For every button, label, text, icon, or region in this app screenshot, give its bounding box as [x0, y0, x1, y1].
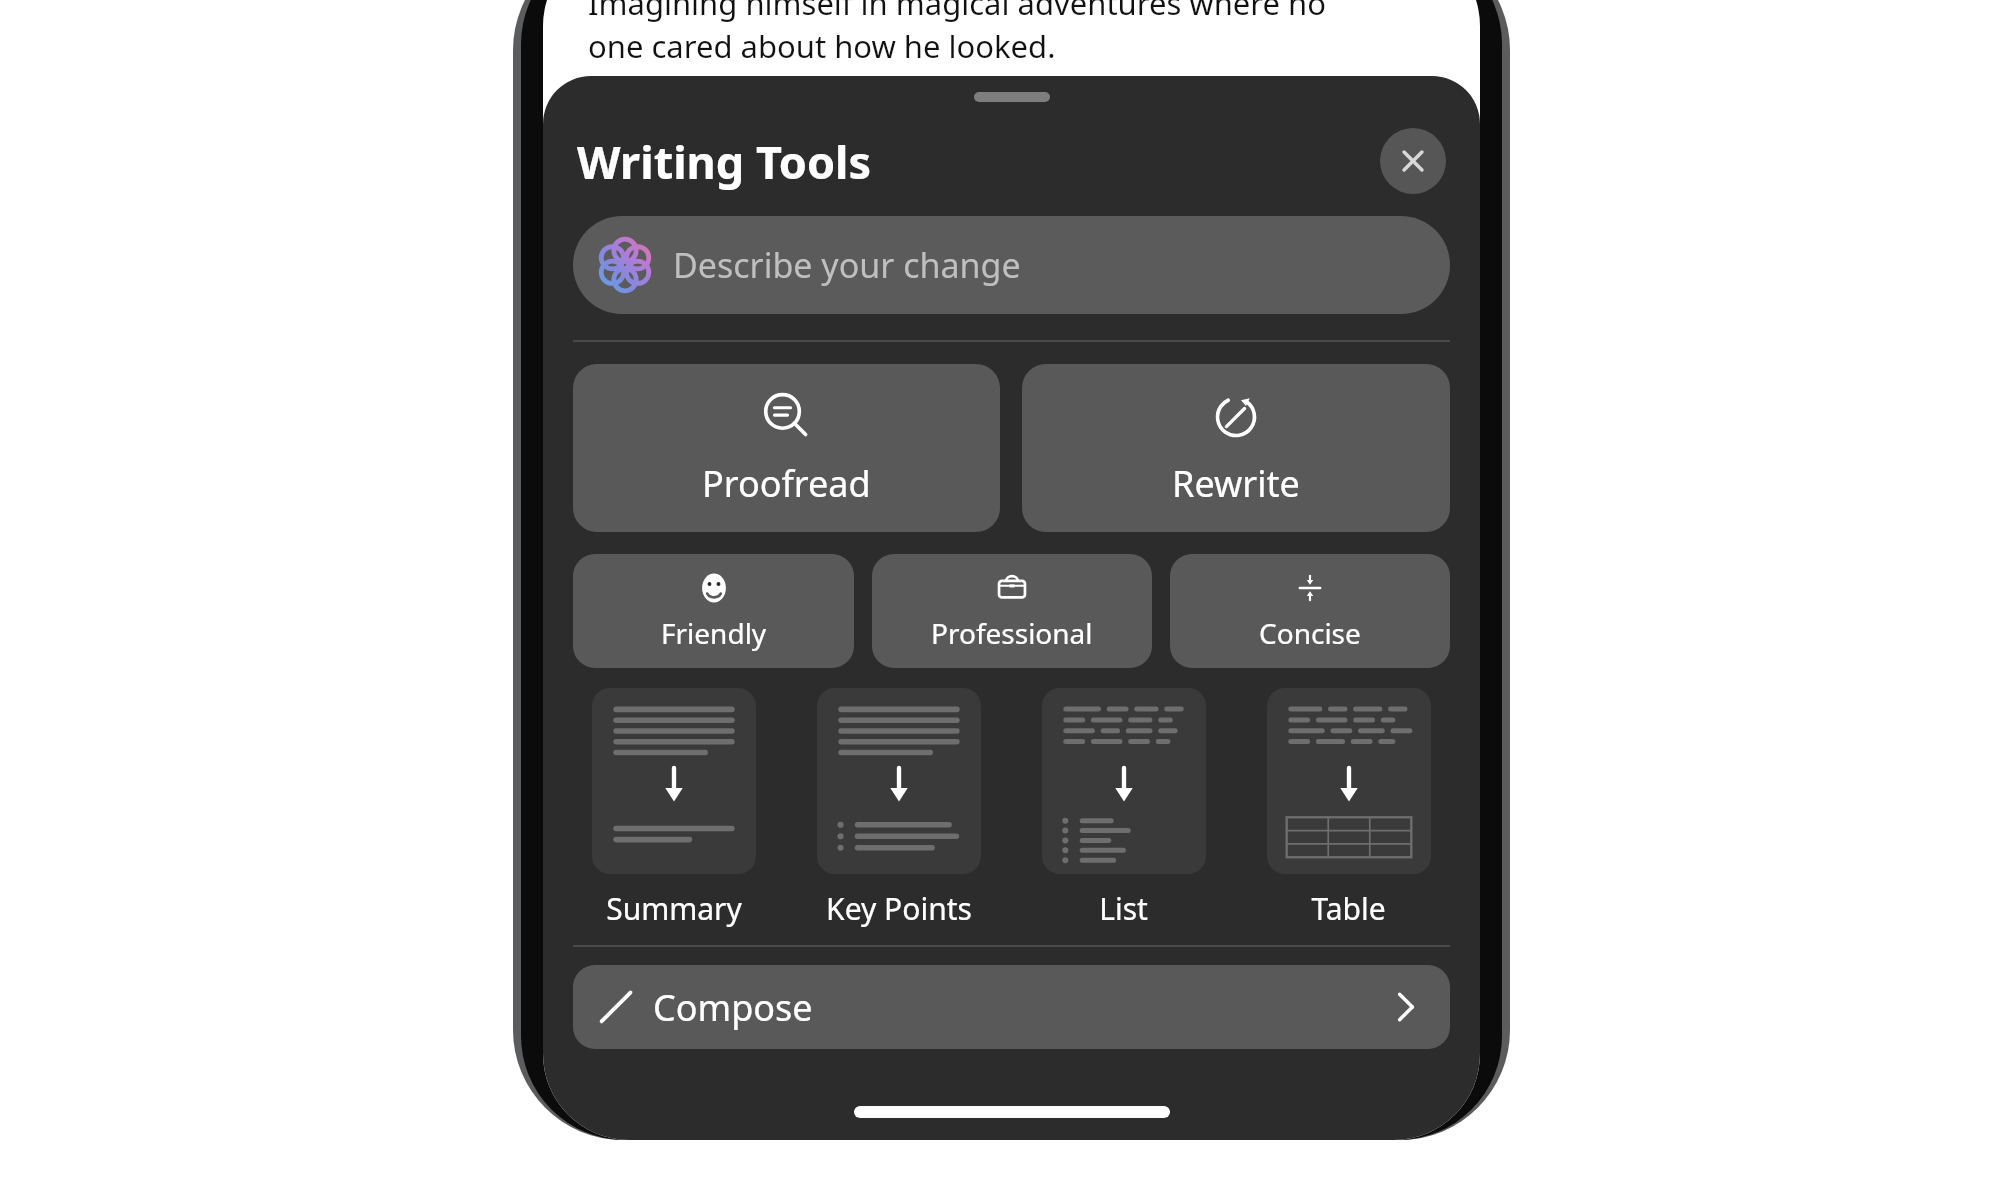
- button[interactable]: Friendly: [573, 554, 854, 668]
- button[interactable]: Rewrite: [1022, 364, 1450, 532]
- staticText: Writing Tools: [577, 131, 872, 192]
- staticText: List: [1099, 888, 1148, 929]
- button[interactable]: Close: [1380, 128, 1446, 194]
- staticText: Key Points: [826, 888, 972, 929]
- button[interactable]: Describe your change: [573, 216, 1450, 314]
- button[interactable]: Proofread: [573, 364, 1000, 532]
- staticText: Rewrite: [1172, 459, 1300, 508]
- staticText: Describe your change: [673, 242, 1021, 288]
- button[interactable]: Concise: [1170, 554, 1450, 668]
- button[interactable]: Key Points: [797, 688, 1000, 929]
- button[interactable]: Professional: [872, 554, 1152, 668]
- button[interactable]: Compose: [573, 965, 1450, 1049]
- button[interactable]: Table: [1247, 688, 1450, 929]
- button[interactable]: List: [1022, 688, 1225, 929]
- staticText: Imagining himself in magical adventures …: [588, 0, 1326, 67]
- button[interactable]: Summary: [573, 688, 775, 929]
- staticText: Table: [1311, 888, 1386, 929]
- staticText: Friendly: [661, 614, 767, 652]
- staticText: Proofread: [702, 459, 871, 508]
- staticText: Professional: [931, 614, 1093, 652]
- staticText: Compose: [653, 983, 813, 1032]
- staticText: Summary: [606, 888, 742, 929]
- staticText: Concise: [1259, 614, 1361, 652]
